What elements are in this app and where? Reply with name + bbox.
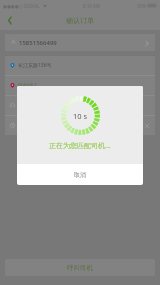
staticText: 确认订单 [66, 16, 94, 25]
other: Clear [143, 122, 151, 130]
button[interactable]: 目的地 ? [5, 76, 155, 95]
staticText: 长江东路136号 [18, 62, 52, 69]
staticText: 50% [137, 3, 146, 9]
button[interactable]: 呼叫司机 [5, 259, 155, 276]
staticText: 呼叫司机 [67, 264, 93, 272]
staticText: 8:16 AM [83, 3, 101, 9]
button[interactable]: Back [0, 11, 19, 30]
button[interactable]: 长江东路136号 [5, 56, 155, 75]
button[interactable]: 15851566499 [5, 34, 155, 51]
staticText: 正在为您匹配司机... [49, 141, 111, 151]
staticText: 取消 [74, 171, 86, 179]
staticText: 目的地 ? [18, 82, 37, 89]
staticText: 10 s [73, 111, 88, 121]
staticText: 15851566499 [19, 39, 57, 47]
staticText: ●●●●○ SIGNAL [3, 3, 40, 9]
button[interactable]: Clear [5, 116, 155, 135]
button[interactable] [5, 96, 155, 115]
button[interactable]: 取消 [17, 164, 143, 185]
